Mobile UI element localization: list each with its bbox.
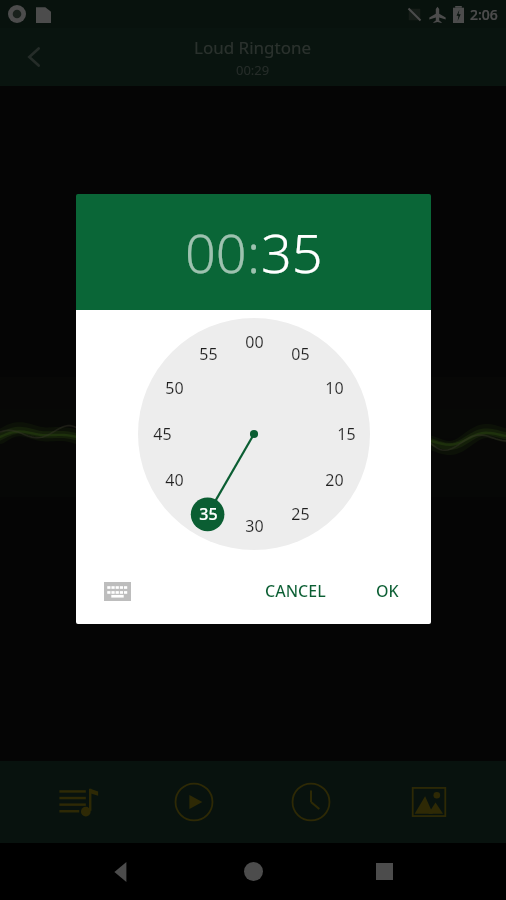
- staticText: CANCEL: [265, 580, 326, 602]
- button[interactable]: Home: [188, 862, 319, 881]
- staticText: 15: [337, 423, 356, 445]
- button[interactable]: 15: [329, 417, 363, 451]
- button[interactable]: Play: [135, 761, 252, 843]
- button[interactable]: 05: [283, 337, 317, 371]
- button[interactable]: Keyboard input: [100, 574, 134, 608]
- staticText: 05: [291, 343, 310, 365]
- staticText: 00: [245, 331, 264, 353]
- staticText: Loud Ringtone: [194, 36, 312, 59]
- button[interactable]: Timer: [252, 761, 370, 843]
- staticText: 10: [325, 377, 344, 399]
- button[interactable]: Recents: [319, 863, 450, 880]
- button[interactable]: 55: [191, 337, 225, 371]
- staticText: 20: [325, 469, 344, 491]
- button[interactable]: 35: [261, 215, 323, 289]
- staticText: 45: [153, 423, 172, 445]
- button[interactable]: Back: [10, 33, 58, 81]
- staticText: :: [247, 215, 261, 289]
- button[interactable]: OK: [364, 572, 411, 610]
- button[interactable]: 40: [157, 463, 191, 497]
- staticText: 00:29: [236, 61, 270, 79]
- button[interactable]: Playlist: [18, 761, 135, 843]
- button[interactable]: 00: [237, 325, 271, 359]
- staticText: 2:06: [470, 5, 498, 24]
- staticText: 25: [291, 503, 310, 525]
- button[interactable]: 30: [237, 509, 271, 543]
- staticText: 55: [199, 343, 218, 365]
- staticText: 50: [165, 377, 184, 399]
- button[interactable]: 20: [317, 463, 351, 497]
- button[interactable]: 50: [157, 371, 191, 405]
- button[interactable]: 00: [185, 215, 247, 289]
- staticText: OK: [376, 580, 399, 602]
- button[interactable]: Back: [56, 862, 188, 882]
- button[interactable]: 10: [317, 371, 351, 405]
- button[interactable]: 25: [283, 497, 317, 531]
- button[interactable]: 45: [145, 417, 179, 451]
- button[interactable]: Image: [370, 761, 488, 843]
- staticText: 30: [245, 515, 264, 537]
- button[interactable]: CANCEL: [253, 572, 338, 610]
- button[interactable]: 35: [191, 497, 225, 531]
- staticText: 35: [199, 503, 218, 525]
- staticText: 40: [165, 469, 184, 491]
